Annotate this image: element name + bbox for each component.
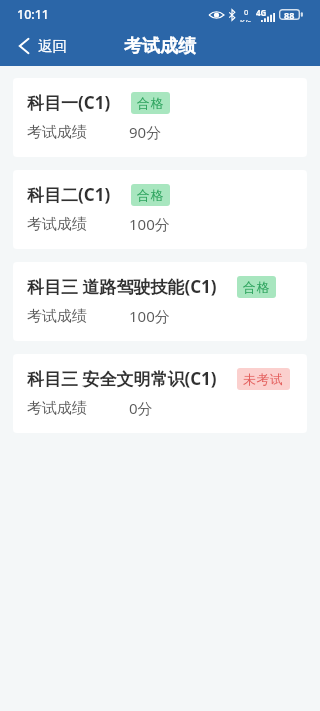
button[interactable]: 科目三 道路驾驶技能(C1)	[13, 262, 307, 341]
staticText: 考试成绩	[27, 123, 87, 142]
staticText: 考试成绩	[27, 399, 87, 418]
button[interactable]: 科目一(C1)	[13, 78, 307, 157]
button[interactable]: 科目三 安全文明常识(C1)	[13, 354, 307, 433]
staticText: 4G	[256, 7, 267, 18]
staticText: 10:11	[17, 6, 50, 23]
staticText: 考试成绩	[124, 35, 196, 58]
staticText: 考试成绩	[27, 215, 87, 234]
staticText: 90分	[129, 122, 162, 142]
staticText: 科目二(C1)	[27, 183, 111, 206]
button[interactable]: 科目二(C1)	[13, 170, 307, 249]
staticText: 0分	[129, 398, 153, 418]
staticText: 科目一(C1)	[27, 91, 111, 114]
staticText: 100分	[129, 306, 170, 326]
staticText: 合格	[243, 279, 270, 295]
staticText: 科目三 道路驾驶技能(C1)	[27, 275, 217, 298]
button[interactable]: 返回	[0, 31, 81, 61]
staticText: 合格	[137, 95, 164, 111]
staticText: 合格	[137, 187, 164, 203]
staticText: 0	[244, 7, 249, 17]
staticText: 未考试	[243, 371, 284, 387]
staticText: 100分	[129, 214, 170, 234]
staticText: 科目三 安全文明常识(C1)	[27, 367, 217, 390]
staticText: K/s	[240, 17, 252, 22]
staticText: 返回	[38, 37, 67, 55]
staticText: 88	[284, 9, 295, 20]
staticText: 考试成绩	[27, 307, 87, 326]
